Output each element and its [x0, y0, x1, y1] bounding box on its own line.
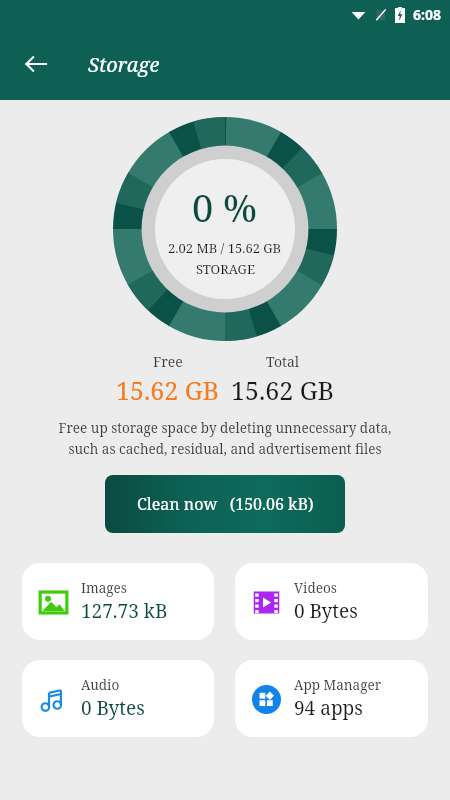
staticText: Videos [294, 579, 337, 597]
staticText: Clean now (150.06 kB) [137, 493, 314, 515]
staticText: App Manager [294, 676, 382, 694]
button[interactable]: App Manager [235, 660, 428, 737]
staticText: 15.62 GB [116, 373, 219, 407]
staticText: 94 apps [294, 695, 363, 721]
button[interactable]: Back [12, 40, 60, 88]
staticText: 15.62 GB [231, 373, 334, 407]
staticText: Free [153, 352, 183, 371]
staticText: 0 % [192, 181, 258, 233]
staticText: Images [81, 579, 127, 597]
staticText: Free up storage space by deleting unnece… [0, 419, 450, 458]
button[interactable]: Clean now (150.06 kB) [105, 475, 345, 533]
staticText: 127.73 kB [81, 598, 168, 624]
staticText: 2.02 MB / 15.62 GB [168, 239, 282, 257]
button[interactable]: Audio [22, 660, 214, 737]
staticText: Total [266, 352, 300, 371]
button[interactable]: Images [22, 563, 214, 640]
staticText: 6:08 [413, 5, 441, 24]
staticText: 0 Bytes [81, 695, 145, 721]
button[interactable]: Videos [235, 563, 428, 640]
staticText: Storage [88, 51, 160, 78]
staticText: STORAGE [196, 260, 255, 278]
staticText: Audio [81, 676, 120, 694]
staticText: 0 Bytes [294, 598, 358, 624]
